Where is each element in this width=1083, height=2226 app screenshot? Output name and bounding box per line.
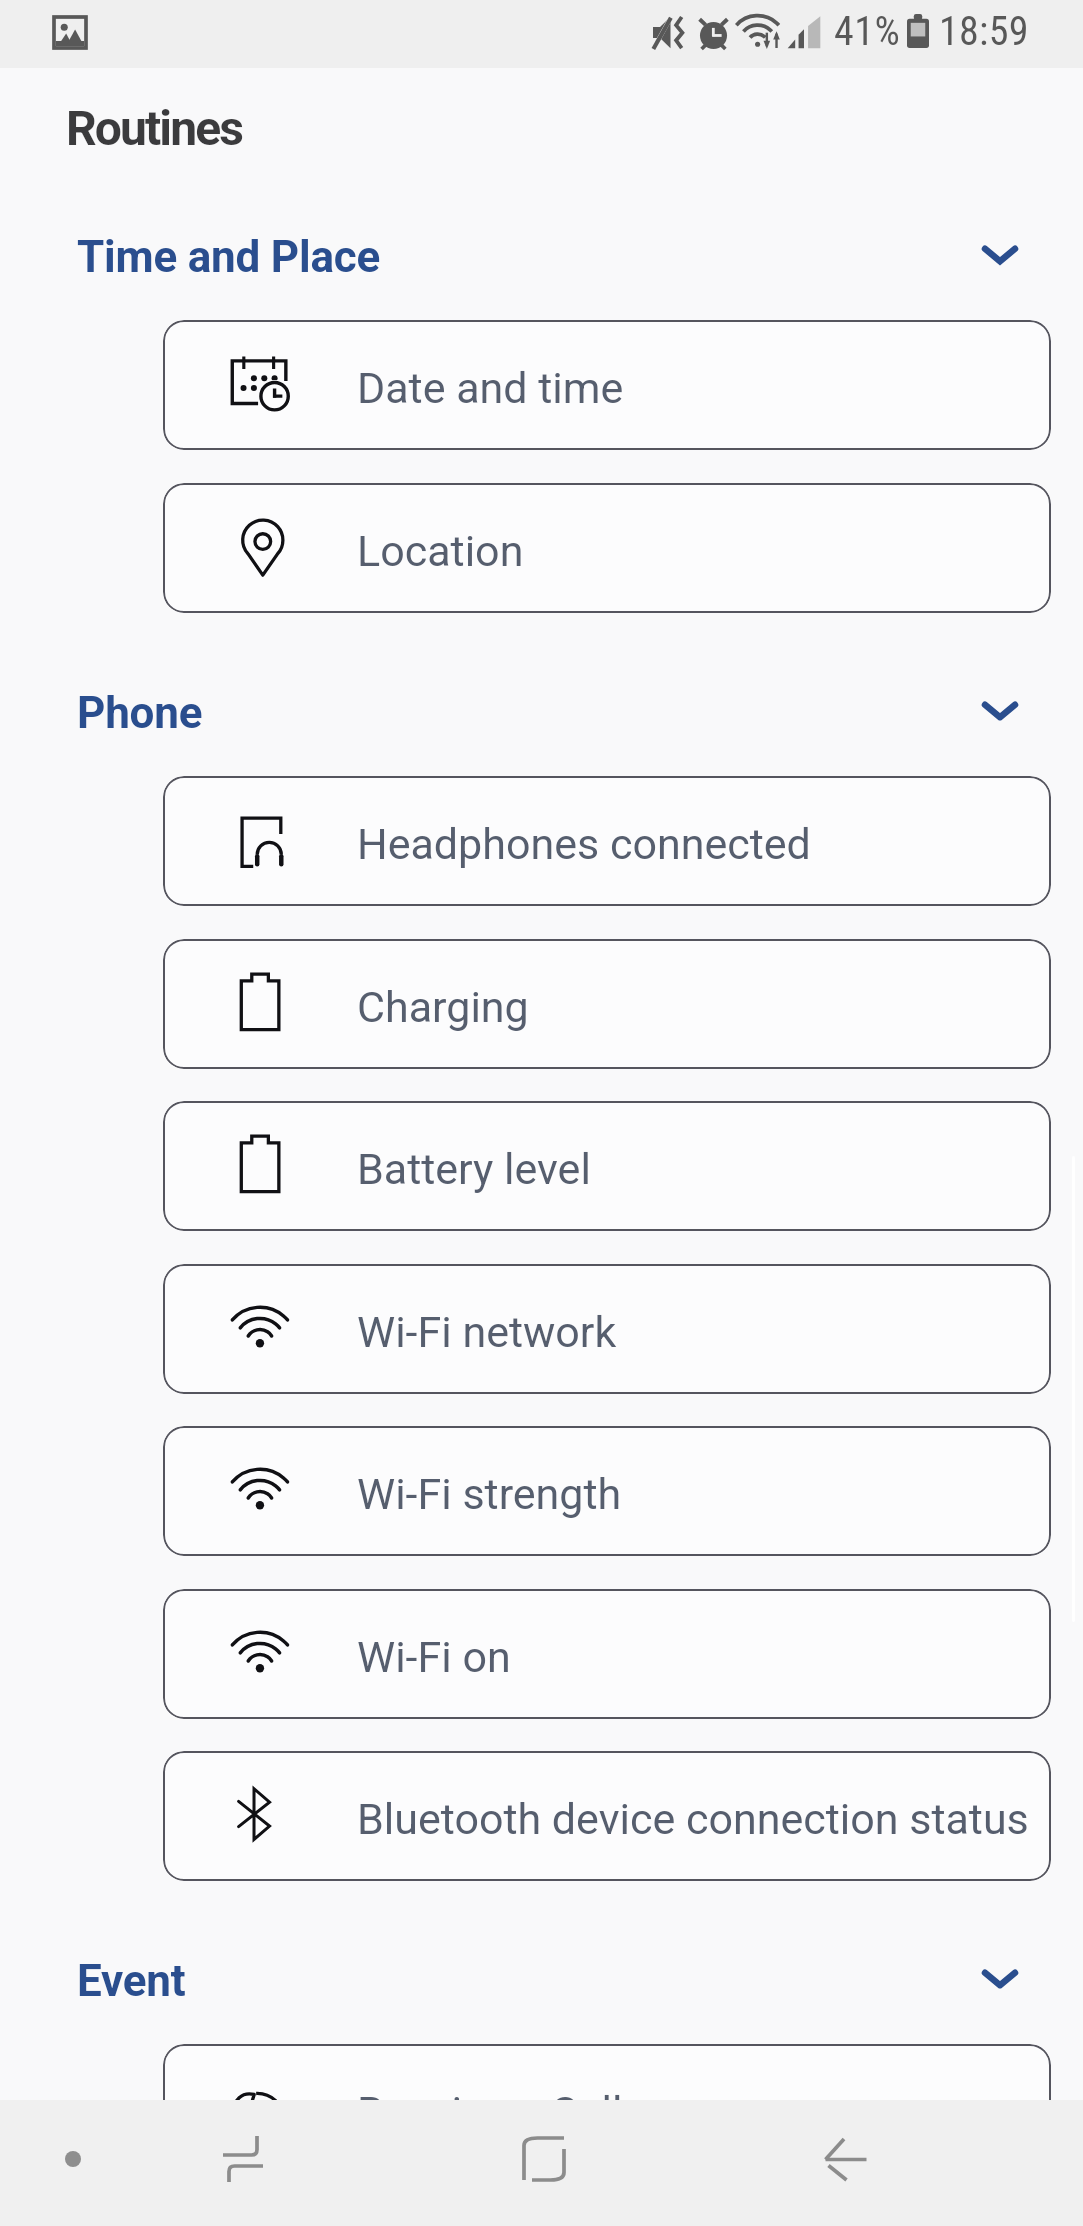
staticText: 41% xyxy=(834,8,901,55)
button[interactable]: Headphones connected xyxy=(163,776,1051,906)
button[interactable]: Home xyxy=(484,2100,604,2226)
button[interactable]: Back xyxy=(786,2100,906,2226)
staticText: Receive a Call xyxy=(357,2087,623,2137)
staticText: Wi-Fi on xyxy=(357,1632,511,1682)
staticText: Date and time xyxy=(357,363,624,413)
staticText: Wi-Fi strength xyxy=(357,1469,622,1519)
button[interactable]: Receive a Call xyxy=(163,2044,1051,2174)
button[interactable]: Wi-Fi on xyxy=(163,1589,1051,1719)
staticText: Event xyxy=(77,1955,186,2007)
staticText: Location xyxy=(357,526,524,576)
button[interactable]: Bluetooth device connection status xyxy=(163,1751,1051,1881)
button[interactable]: Wi-Fi network xyxy=(163,1264,1051,1394)
button[interactable]: Event xyxy=(0,1929,1083,2029)
button[interactable]: Wi-Fi strength xyxy=(163,1426,1051,1556)
button[interactable]: Recent apps xyxy=(183,2100,303,2226)
button[interactable]: Location xyxy=(163,483,1051,613)
button[interactable]: Time and Place xyxy=(0,205,1083,305)
staticText: Time and Place xyxy=(77,231,381,283)
button[interactable]: Date and time xyxy=(163,320,1051,450)
button[interactable]: Phone xyxy=(0,661,1083,761)
staticText: Bluetooth device connection status xyxy=(357,1794,1029,1844)
staticText: Wi-Fi network xyxy=(357,1307,617,1357)
button[interactable]: Battery level xyxy=(163,1101,1051,1231)
staticText: Charging xyxy=(357,982,529,1032)
staticText: Phone xyxy=(77,687,203,739)
button[interactable]: Charging xyxy=(163,939,1051,1069)
button[interactable]: Assistant xyxy=(30,2100,116,2226)
staticText: Battery level xyxy=(357,1144,591,1194)
staticText: Headphones connected xyxy=(357,819,811,869)
staticText: Routines xyxy=(66,100,242,156)
staticText: 18:59 xyxy=(939,8,1029,55)
